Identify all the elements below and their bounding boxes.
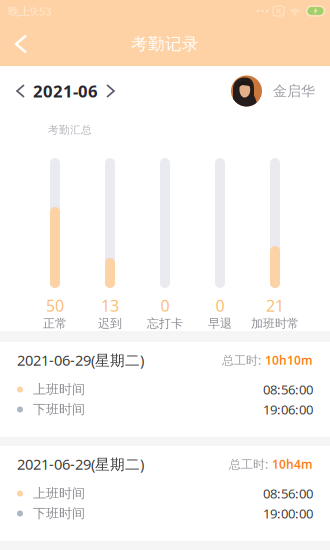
button[interactable]: 2021-06-29(星期二): [0, 446, 330, 541]
button[interactable]: 金启华: [231, 75, 315, 106]
staticText: 2021-06-29(星期二): [17, 350, 144, 370]
staticText: 金启华: [273, 82, 315, 100]
staticText: 10h10m: [265, 352, 313, 368]
staticText: 2021-06-29(星期二): [17, 454, 144, 474]
staticText: 早退: [208, 316, 232, 331]
staticText: 考勤记录: [131, 34, 199, 54]
staticText: 考勤汇总: [48, 123, 92, 137]
staticText: 21: [266, 295, 284, 316]
staticText: 下班时间: [33, 401, 85, 418]
staticText: 0: [215, 295, 224, 316]
staticText: 19:00:00: [263, 505, 313, 522]
staticText: 10h4m: [272, 456, 313, 472]
staticText: 正常: [43, 316, 67, 331]
staticText: 下班时间: [33, 505, 85, 522]
staticText: 加班时常: [251, 316, 299, 331]
staticText: 13: [101, 295, 119, 316]
staticText: 2021-06: [33, 80, 98, 102]
staticText: 总工时:: [222, 352, 261, 368]
staticText: 上班时间: [33, 381, 85, 398]
staticText: 0: [160, 295, 169, 316]
button[interactable]: Back: [0, 22, 42, 66]
staticText: 总工时:: [229, 456, 268, 472]
staticText: 迟到: [98, 316, 122, 331]
button[interactable]: 2021-06: [17, 74, 114, 108]
staticText: 19:06:00: [263, 401, 313, 418]
staticText: 晚上9:53: [8, 3, 51, 19]
staticText: 08:56:00: [263, 381, 313, 398]
staticText: 08:56:00: [263, 485, 313, 502]
staticText: 忘打卡: [147, 316, 183, 331]
staticText: 上班时间: [33, 485, 85, 502]
staticText: 50: [46, 295, 64, 316]
button[interactable]: 2021-06-29(星期二): [0, 342, 330, 437]
